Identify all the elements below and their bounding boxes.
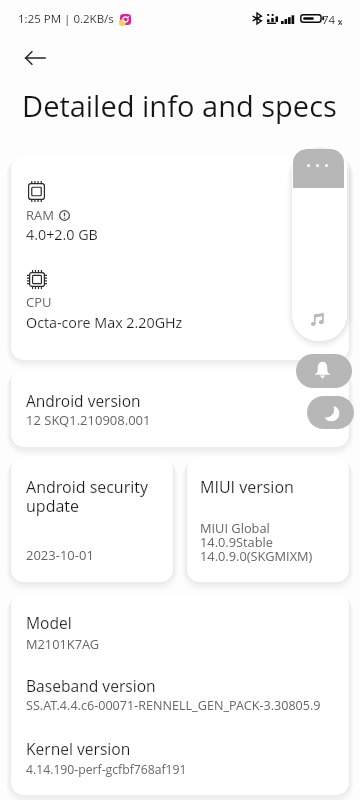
staticText: 4.0+2.0 GB [26,225,98,244]
staticText: 4.14.190-perf-gcfbf768af191 [26,761,187,778]
button[interactable]: Back [12,36,56,80]
staticText: Android version [26,390,141,411]
staticText: Model [26,612,72,633]
staticText: 2023-10-01 [26,546,94,564]
staticText: SS.AT.4.4.c6-00071-RENNELL_GEN_PACK-3.30… [26,697,321,714]
staticText: 74 [322,12,336,28]
staticText: Android security update [26,476,148,516]
staticText: Kernel version [26,738,131,759]
button[interactable]: MIUI version [187,457,349,582]
button[interactable]: Do not disturb [307,396,354,429]
staticText: 1:25 PM | 0.2KB/s [18,11,114,27]
staticText: Baseband version [26,675,156,696]
button[interactable]: Android version [11,370,349,447]
button[interactable]: Android security update [11,457,173,582]
staticText: 12 SKQ1.210908.001 [26,411,151,429]
button[interactable]: Notifications [296,354,352,388]
staticText: MIUI Global 14.0.9Stable 14.0.9.0(SKGMIX… [200,519,313,565]
staticText: CPU [26,293,52,311]
button[interactable]: Floating window [292,149,347,341]
staticText: Detailed info and specs [22,86,337,125]
staticText: RAM [26,206,54,224]
staticText: MIUI version [200,476,294,498]
button[interactable]: RAM and CPU [11,156,349,360]
staticText: M2101K7AG [26,635,100,652]
staticText: Octa-core Max 2.20GHz [26,313,183,332]
button[interactable]: Model, baseband version and kernel versi… [11,594,349,795]
